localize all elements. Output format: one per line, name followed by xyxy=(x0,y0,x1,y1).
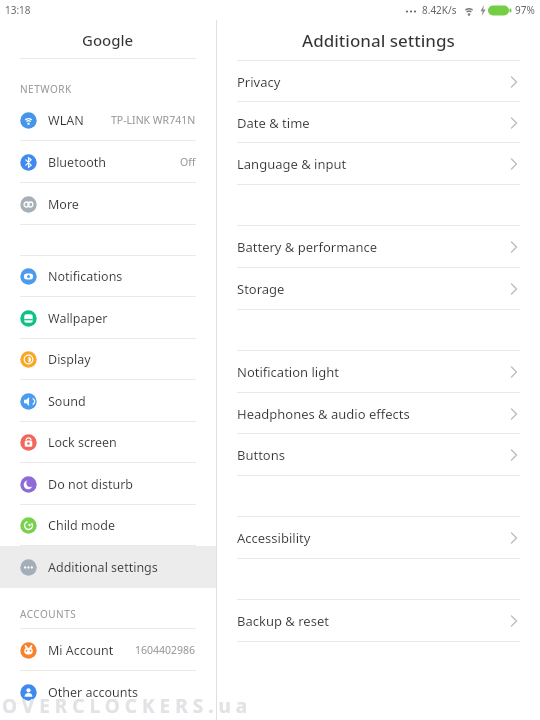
button[interactable]: Wallpaper xyxy=(0,297,216,339)
staticText: TP-LINK WR741N xyxy=(111,113,196,127)
staticText: ACCOUNTS xyxy=(20,607,77,621)
button[interactable]: Child mode xyxy=(0,505,216,546)
staticText: Additional settings xyxy=(302,29,455,52)
staticText: More xyxy=(48,196,79,213)
staticText: Notification light xyxy=(237,363,339,381)
staticText: Buttons xyxy=(237,446,285,464)
staticText: 97% xyxy=(515,3,535,17)
button[interactable]: Privacy xyxy=(217,61,540,102)
staticText: Off xyxy=(180,155,196,169)
staticText: Lock screen xyxy=(48,434,117,451)
button[interactable]: Additional settings xyxy=(0,546,216,588)
staticText: 1604402986 xyxy=(135,643,196,657)
button[interactable]: Language & input xyxy=(217,143,540,185)
staticText: OVERCLOCKERS.ua xyxy=(2,693,253,719)
staticText: Date & time xyxy=(237,114,310,132)
staticText: Headphones & audio effects xyxy=(237,405,410,423)
staticText: Battery & performance xyxy=(237,238,378,256)
button[interactable]: Bluetooth xyxy=(0,141,216,183)
staticText: 8.42K/s xyxy=(422,3,457,17)
staticText: Other accounts xyxy=(48,684,138,701)
button[interactable]: Notification light xyxy=(217,351,540,393)
button[interactable]: Sound xyxy=(0,380,216,422)
staticText: Display xyxy=(48,351,91,368)
staticText: Bluetooth xyxy=(48,154,107,171)
staticText: Storage xyxy=(237,280,285,298)
staticText: Privacy xyxy=(237,73,281,91)
staticText: Backup & reset xyxy=(237,612,329,630)
staticText: Google xyxy=(82,30,134,50)
staticText: Sound xyxy=(48,393,86,410)
staticText: Additional settings xyxy=(48,559,158,576)
button[interactable]: Headphones & audio effects xyxy=(217,393,540,434)
button[interactable]: Display xyxy=(0,339,216,380)
button[interactable]: WLAN xyxy=(0,99,216,141)
button[interactable]: Other accounts xyxy=(0,671,216,713)
button[interactable]: Do not disturb xyxy=(0,463,216,505)
button[interactable]: Backup & reset xyxy=(217,600,540,642)
staticText: Wallpaper xyxy=(48,310,108,327)
button[interactable]: Accessibility xyxy=(217,517,540,559)
button[interactable]: Buttons xyxy=(217,434,540,476)
staticText: Child mode xyxy=(48,517,116,534)
staticText: Do not disturb xyxy=(48,476,133,493)
staticText: WLAN xyxy=(48,112,84,129)
staticText: NETWORK xyxy=(20,82,72,96)
button[interactable]: Battery & performance xyxy=(217,226,540,268)
button[interactable]: Storage xyxy=(217,268,540,310)
staticText: Accessibility xyxy=(237,529,311,547)
staticText: 13:18 xyxy=(5,3,31,17)
button[interactable]: Notifications xyxy=(0,256,216,297)
button[interactable]: More xyxy=(0,183,216,225)
staticText: Language & input xyxy=(237,155,347,173)
button[interactable]: Mi Account xyxy=(0,629,216,671)
staticText: Mi Account xyxy=(48,642,114,659)
button[interactable]: Lock screen xyxy=(0,422,216,463)
staticText: Notifications xyxy=(48,268,123,285)
button[interactable]: Date & time xyxy=(217,102,540,143)
